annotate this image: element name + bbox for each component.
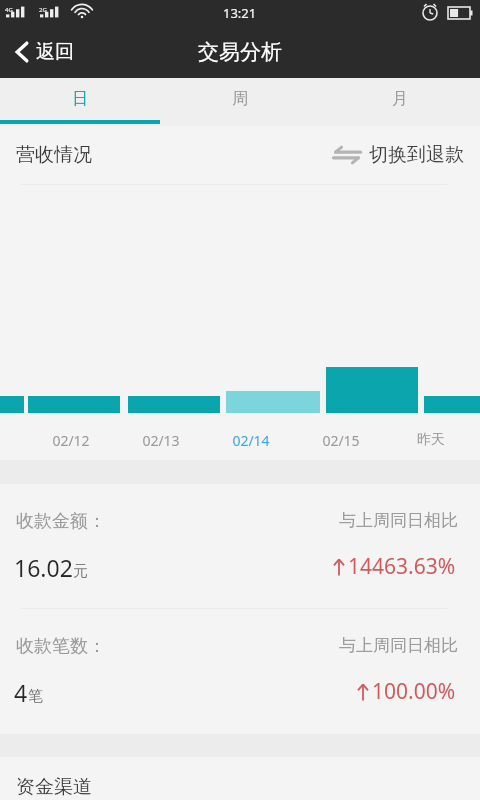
staticText: 13:21 — [223, 4, 257, 22]
staticText: 与上周同日相比 — [339, 635, 458, 656]
staticText: 周 — [232, 89, 248, 109]
staticText: 收款笔数： — [16, 635, 106, 658]
staticText: 收款金额： — [16, 510, 106, 533]
staticText: 100.00% — [372, 677, 456, 706]
staticText: 笔 — [28, 687, 43, 706]
staticText: 4G — [5, 6, 13, 14]
button[interactable]: 日 — [0, 78, 160, 126]
button[interactable]: 月 — [320, 78, 480, 126]
button[interactable]: 周 — [160, 78, 320, 126]
staticText: 月 — [392, 89, 408, 109]
button[interactable]: 返回 — [0, 26, 86, 78]
staticText: 切换到退款 — [369, 143, 464, 167]
staticText: 2G — [39, 6, 47, 14]
staticText: 返回 — [36, 40, 74, 64]
staticText: 02/13 — [142, 431, 180, 450]
button[interactable]: 切换到退款 — [332, 126, 480, 184]
staticText: 日 — [72, 89, 88, 109]
staticText: 02/15 — [322, 431, 360, 450]
staticText: 营收情况 — [16, 143, 92, 167]
staticText: 昨天 — [417, 431, 445, 449]
staticText: 元 — [73, 562, 88, 581]
staticText: 02/12 — [52, 431, 90, 450]
staticText: 资金渠道 — [16, 775, 92, 799]
staticText: 与上周同日相比 — [339, 510, 458, 531]
staticText: 14463.63% — [348, 552, 456, 581]
staticText: 4 — [14, 677, 28, 708]
staticText: 交易分析 — [198, 39, 282, 65]
staticText: 02/14 — [232, 431, 270, 450]
staticText: 16.02 — [14, 552, 73, 583]
